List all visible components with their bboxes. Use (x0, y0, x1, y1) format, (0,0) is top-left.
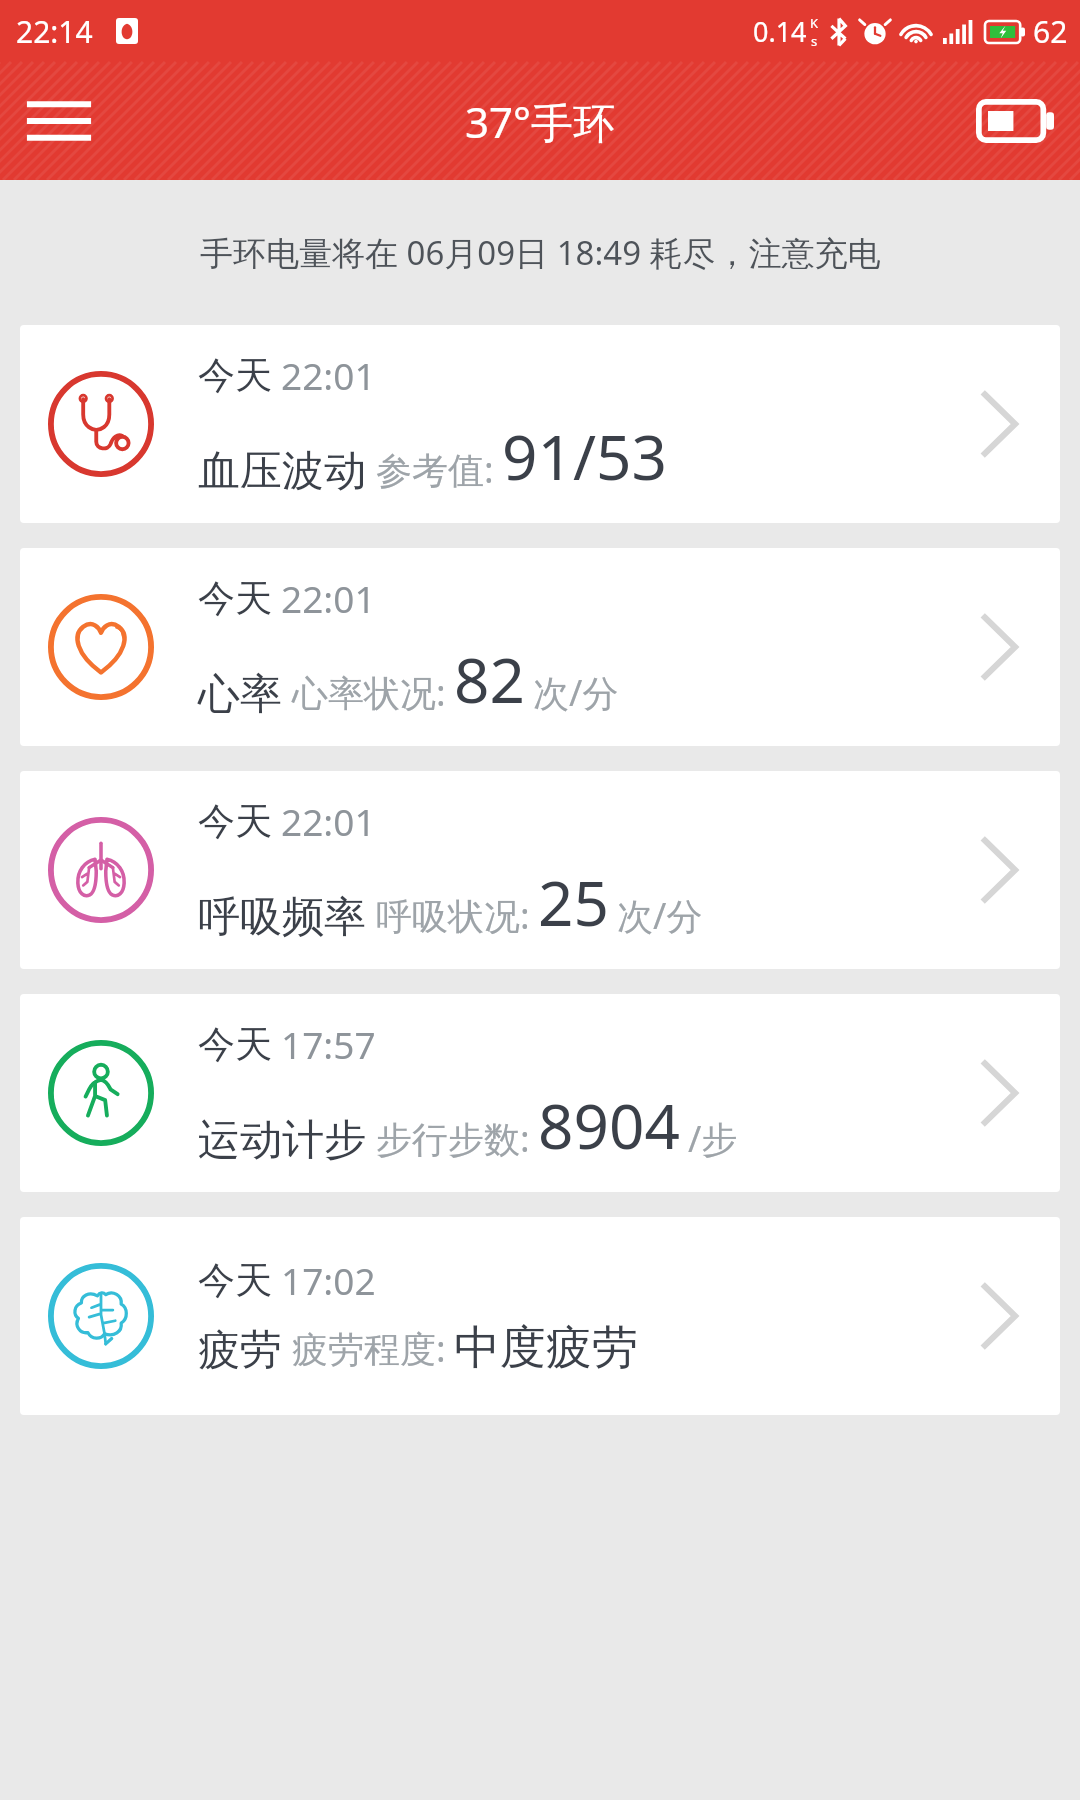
staticText: 手环电量将在 06月09日 18:49 耗尽，注意充电 (200, 230, 881, 275)
staticText: 8904 (538, 1083, 680, 1167)
staticText: 今天 (198, 1257, 272, 1304)
staticText: 呼吸频率 (198, 891, 366, 944)
staticText: 今天 (198, 798, 272, 845)
staticText: 呼吸状况: (376, 891, 530, 940)
staticText: 血压波动 (198, 445, 366, 498)
button[interactable]: 今天 (20, 994, 1060, 1192)
staticText: 37°手环 (465, 93, 616, 150)
button[interactable]: 今天 (20, 771, 1060, 969)
staticText: 参考值: (376, 445, 494, 494)
staticText: 0.14 (753, 13, 807, 50)
staticText: 82 (454, 637, 525, 721)
staticText: 22:01 (281, 796, 376, 846)
staticText: 心率状况: (292, 668, 446, 717)
staticText: 22:01 (281, 573, 376, 623)
staticText: 疲劳程度: (292, 1324, 446, 1373)
staticText: K (810, 14, 819, 32)
staticText: 25 (538, 860, 609, 944)
staticText: 17:57 (281, 1019, 376, 1069)
staticText: 步行步数: (376, 1114, 530, 1163)
staticText: 今天 (198, 1021, 272, 1068)
staticText: 62 (1033, 11, 1068, 52)
staticText: 疲劳 (198, 1324, 282, 1377)
button[interactable]: Band battery (950, 62, 1080, 180)
button[interactable]: Menu (0, 62, 118, 180)
staticText: 今天 (198, 575, 272, 622)
staticText: /步 (688, 1114, 738, 1163)
staticText: 今天 (198, 352, 272, 399)
staticText: 次/分 (617, 891, 703, 940)
staticText: 22:14 (16, 11, 93, 52)
button[interactable]: 今天 (20, 548, 1060, 746)
staticText: 22:01 (281, 350, 376, 400)
button[interactable]: 今天 (20, 1217, 1060, 1415)
staticText: 中度疲劳 (454, 1319, 638, 1377)
staticText: 17:02 (281, 1255, 376, 1305)
staticText: 心率 (198, 668, 282, 721)
staticText: s (811, 32, 818, 50)
staticText: 91/53 (502, 414, 667, 498)
staticText: 运动计步 (198, 1114, 366, 1167)
button[interactable]: 今天 (20, 325, 1060, 523)
staticText: 次/分 (533, 668, 619, 717)
